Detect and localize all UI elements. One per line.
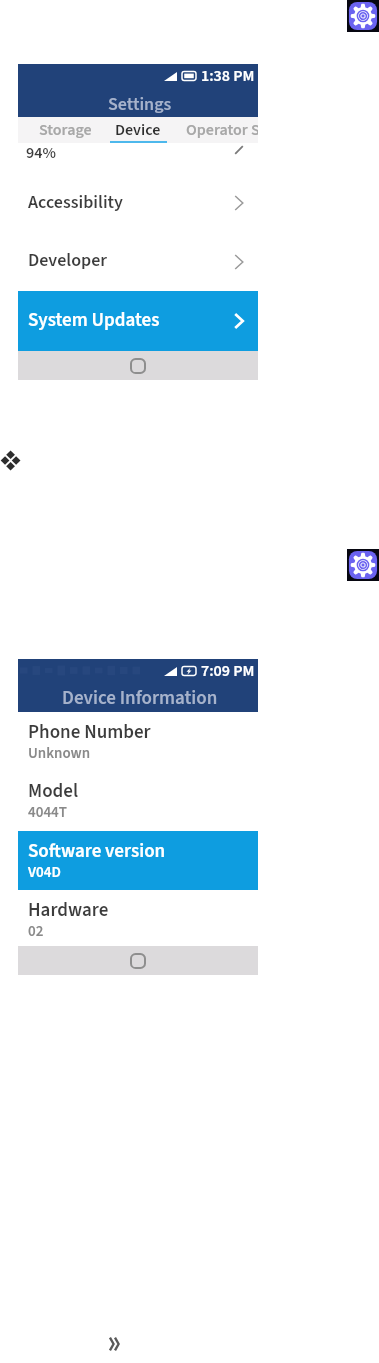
- staticText: 4044T: [28, 802, 67, 823]
- staticText: Device: [115, 119, 161, 142]
- staticText: Storage: [39, 119, 92, 142]
- staticText: Phone Number: [28, 719, 151, 746]
- staticText: 1:38 PM: [201, 65, 255, 87]
- staticText: Developer: [28, 248, 108, 274]
- staticText: Model: [28, 778, 79, 805]
- button[interactable]: Phone Number: [18, 712, 258, 771]
- button[interactable]: Model: [18, 771, 258, 831]
- button[interactable]: Device: [93, 117, 183, 143]
- staticText: Settings: [108, 92, 172, 118]
- button[interactable]: Settings: [347, 0, 379, 32]
- staticText: System Updates: [28, 307, 160, 334]
- staticText: Device Information: [62, 685, 218, 712]
- button[interactable]: Accessibility: [18, 174, 258, 232]
- button[interactable]: Developer: [18, 232, 258, 291]
- button[interactable]: Hardware: [18, 890, 258, 946]
- button[interactable]: Software version: [18, 831, 258, 890]
- button[interactable]: Storage: [18, 117, 113, 143]
- staticText: 7:09 PM: [201, 660, 255, 682]
- staticText: V04D: [28, 862, 61, 883]
- staticText: 02: [28, 921, 44, 942]
- staticText: 94%: [26, 142, 56, 165]
- button[interactable]: System Updates: [18, 291, 258, 351]
- button[interactable]: Settings: [347, 549, 379, 581]
- staticText: Unknown: [28, 743, 91, 764]
- staticText: Operator S: [186, 119, 258, 142]
- staticText: Software version: [28, 838, 166, 865]
- button[interactable]: Next: [106, 1334, 124, 1354]
- staticText: Hardware: [28, 897, 109, 924]
- staticText: Accessibility: [28, 190, 124, 216]
- button[interactable]: Operator S: [186, 117, 258, 143]
